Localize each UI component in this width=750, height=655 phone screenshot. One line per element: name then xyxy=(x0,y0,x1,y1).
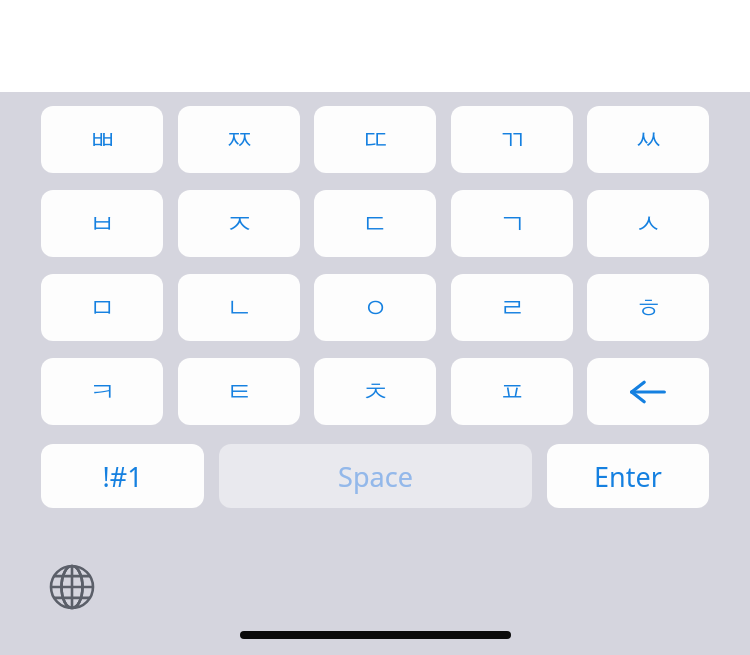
staticText: ㄷ xyxy=(362,207,389,241)
staticText: ㅉ xyxy=(226,123,253,157)
button[interactable]: ㅃ xyxy=(41,106,163,173)
staticText: ㄹ xyxy=(499,291,526,325)
button[interactable]: ㄸ xyxy=(314,106,436,173)
button[interactable]: Space xyxy=(219,444,532,508)
staticText: ㅍ xyxy=(499,375,526,409)
button[interactable]: ㄴ xyxy=(178,274,300,341)
staticText: ㅎ xyxy=(635,291,662,325)
staticText: Space xyxy=(338,458,413,495)
button[interactable]: ㅈ xyxy=(178,190,300,257)
button[interactable]: ㄷ xyxy=(314,190,436,257)
staticText: ㄴ xyxy=(226,291,253,325)
button[interactable]: Enter xyxy=(547,444,709,508)
staticText: ㅇ xyxy=(362,291,389,325)
button[interactable]: Switch keyboard language xyxy=(49,564,95,610)
staticText: ㅁ xyxy=(89,291,116,325)
button[interactable]: ㅊ xyxy=(314,358,436,425)
staticText: ㅅ xyxy=(635,207,662,241)
button[interactable]: ㅍ xyxy=(451,358,573,425)
button[interactable]: ㅅ xyxy=(587,190,709,257)
staticText: ㅈ xyxy=(226,207,253,241)
button[interactable]: ㄹ xyxy=(451,274,573,341)
staticText: Enter xyxy=(594,458,662,495)
button[interactable]: ㄱ xyxy=(451,190,573,257)
button[interactable]: ㄲ xyxy=(451,106,573,173)
button[interactable]: ㅌ xyxy=(178,358,300,425)
button[interactable]: ㅇ xyxy=(314,274,436,341)
staticText: ㅋ xyxy=(89,375,116,409)
staticText: ㅊ xyxy=(362,375,389,409)
staticText: ㅆ xyxy=(635,123,662,157)
staticText: !#1 xyxy=(102,458,143,495)
button[interactable]: !#1 xyxy=(41,444,204,508)
staticText: ㄲ xyxy=(499,123,526,157)
staticText: ㅌ xyxy=(226,375,253,409)
button[interactable]: ㅂ xyxy=(41,190,163,257)
button[interactable]: ㅎ xyxy=(587,274,709,341)
button[interactable]: ㅋ xyxy=(41,358,163,425)
staticText: ㄸ xyxy=(362,123,389,157)
button[interactable]: Backspace xyxy=(587,358,709,425)
staticText: ㅂ xyxy=(89,207,116,241)
button[interactable]: ㅁ xyxy=(41,274,163,341)
button[interactable]: ㅆ xyxy=(587,106,709,173)
button[interactable]: ㅉ xyxy=(178,106,300,173)
staticText: ㅃ xyxy=(89,123,116,157)
staticText: ㄱ xyxy=(499,207,526,241)
